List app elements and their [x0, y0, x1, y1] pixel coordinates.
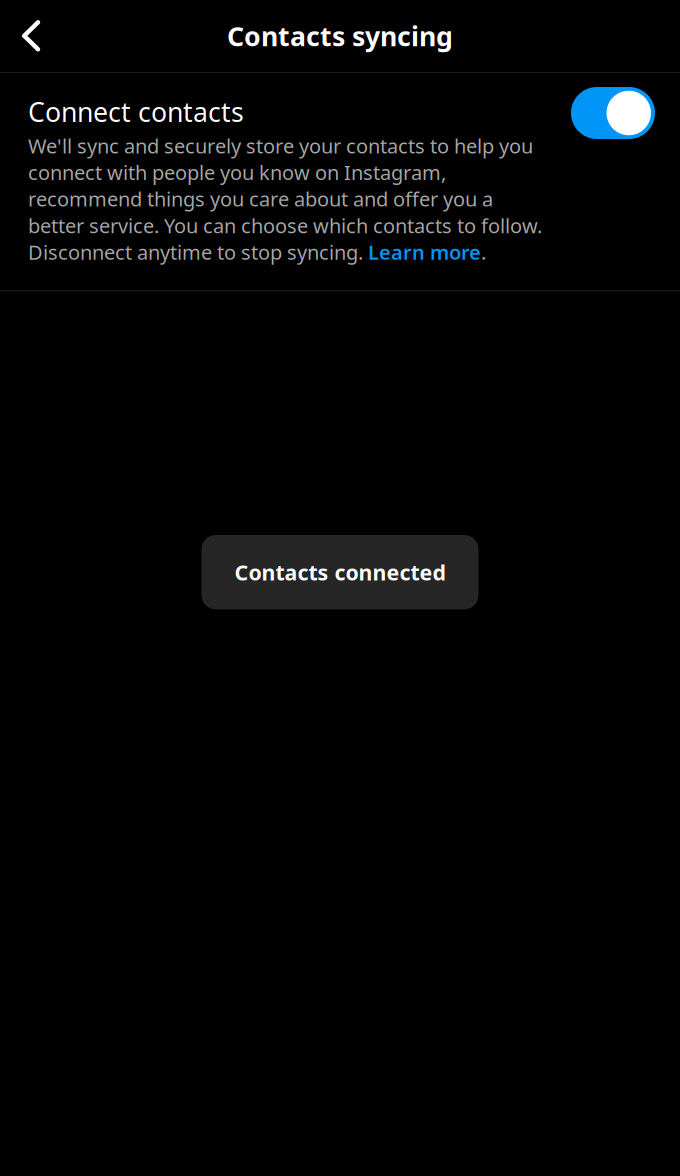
button[interactable]: Back: [0, 5, 62, 67]
staticText: Contacts syncing: [227, 18, 453, 54]
staticText: Connect contacts: [28, 94, 244, 129]
staticText: We'll sync and securely store your conta…: [28, 132, 542, 265]
button[interactable]: Connect contacts: [571, 87, 655, 139]
staticText: Contacts connected: [234, 558, 445, 586]
